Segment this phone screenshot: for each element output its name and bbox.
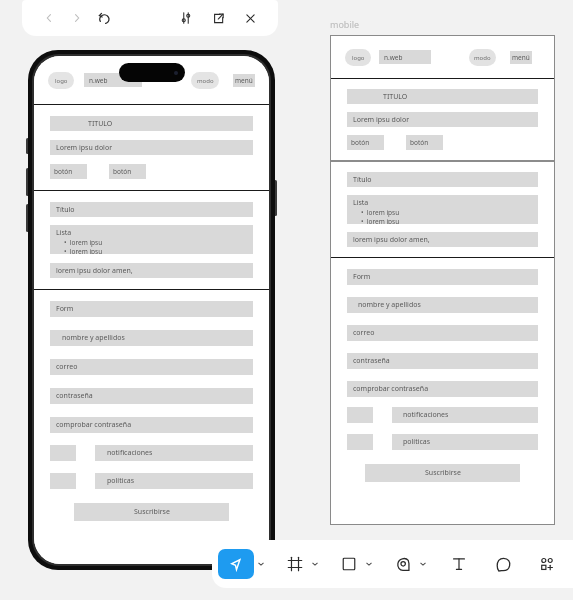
staticText: Título [56,205,75,215]
staticText: logo [55,77,68,85]
staticText: menú [512,53,530,62]
staticText: Form [353,272,371,282]
button[interactable]: Form [50,301,253,317]
button[interactable]: comprobar contraseña [50,417,253,433]
button[interactable]: lorem ipsu dolor amen, [347,232,538,247]
button[interactable]: Frame tool options [308,550,322,578]
staticText: correo [56,362,78,372]
button[interactable]: Pen tool options [416,550,430,578]
button[interactable]: modo [191,72,219,89]
staticText: n.web [384,53,403,62]
staticText: nombre y apellidos [62,333,125,343]
staticText: Lorem ipsu dolor [56,143,113,153]
staticText: contraseña [353,356,390,366]
button[interactable]: botón [406,135,443,150]
staticText: botón [410,138,429,147]
button[interactable]: Text tool [446,551,472,577]
staticText: Suscribirse [134,507,170,517]
staticText: • lorem ipsu [361,217,400,224]
button[interactable]: Título [50,202,253,217]
button[interactable]: Settings [174,6,198,30]
button[interactable]: Suscribirse [74,503,229,521]
button[interactable]: Forward [66,7,88,29]
staticText: menú [235,76,253,85]
button[interactable]: Close [238,6,262,30]
staticText: modo [474,54,491,62]
button[interactable]: Título [347,172,538,187]
button[interactable]: botón [347,135,384,150]
button[interactable]: Pen tool [390,551,416,577]
button[interactable]: nombre y apellidos [347,297,538,313]
button[interactable]: menú [510,51,532,64]
staticText: políticas [107,476,135,486]
staticText: botón [54,167,73,176]
button[interactable]: logo [48,72,74,89]
staticText: Lorem ipsu dolor [353,115,410,125]
button[interactable]: políticas [392,434,538,450]
staticText: comprobar contraseña [56,420,132,430]
staticText: Form [56,304,74,314]
staticText: contraseña [56,391,93,401]
button[interactable]: TITULO [347,89,538,104]
button[interactable]: comprobar contraseña [347,381,538,397]
button[interactable]: Lista [50,225,253,254]
button[interactable]: contraseña [347,353,538,369]
button[interactable]: Lista [347,195,538,224]
button[interactable]: n.web [379,50,431,64]
staticText: TITULO [383,92,408,102]
button[interactable]: políticas [95,473,253,489]
button[interactable]: contraseña [50,388,253,404]
button[interactable]: logo [345,49,371,66]
button[interactable]: Move tool options [254,550,268,578]
button[interactable]: Lorem ipsu dolor [347,112,538,127]
button[interactable]: notificaciones [392,407,538,423]
staticText: políticas [403,437,431,447]
staticText: Título [353,175,372,185]
staticText: • lorem ipsu [361,208,400,217]
button[interactable]: Undo [92,6,116,30]
button[interactable]: Lorem ipsu dolor [50,140,253,155]
staticText: lorem ipsu dolor amen, [56,266,133,276]
button[interactable]: notificaciones [95,445,253,461]
staticText: logo [352,54,365,62]
staticText: notificaciones [107,448,153,458]
button[interactable]: correo [347,325,538,341]
staticText: botón [113,167,132,176]
button[interactable]: Shape tool [336,551,362,577]
button[interactable]: botón [50,164,87,179]
button[interactable]: Shape tool options [362,550,376,578]
button[interactable]: Move tool [218,549,254,579]
staticText: comprobar contraseña [353,384,429,394]
button[interactable]: lorem ipsu dolor amen, [50,263,253,278]
staticText: modo [197,77,214,85]
staticText: Lista [353,198,369,208]
button[interactable]: Frame tool [282,551,308,577]
button[interactable]: menú [233,74,255,87]
button[interactable]: n.web [84,73,142,87]
staticText: • lorem ipsu [64,247,103,254]
staticText: notificaciones [403,410,449,420]
button[interactable]: Share [206,6,230,30]
staticText: mobile [330,18,360,30]
button[interactable]: botón [109,164,146,179]
button[interactable]: Components [534,551,560,577]
staticText: Lista [56,228,72,238]
staticText: n.web [89,76,108,85]
staticText: lorem ipsu dolor amen, [353,235,430,245]
button[interactable]: modo [469,49,496,66]
staticText: botón [351,138,370,147]
button[interactable]: nombre y apellidos [50,330,253,346]
staticText: • lorem ipsu [64,238,103,247]
button[interactable]: Comment [490,551,516,577]
button[interactable]: correo [50,359,253,375]
button[interactable]: Suscribirse [365,464,520,482]
staticText: correo [353,328,375,338]
staticText: TITULO [88,119,113,129]
button[interactable]: Back [38,7,60,29]
button[interactable]: Form [347,269,538,285]
button[interactable]: TITULO [50,116,253,131]
